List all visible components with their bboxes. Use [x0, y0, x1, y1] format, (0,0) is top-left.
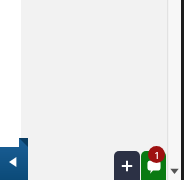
button[interactable]: Chat	[141, 151, 166, 180]
staticText: 1	[154, 149, 160, 161]
button[interactable]: Add	[114, 151, 140, 180]
button[interactable]: Previous	[0, 138, 28, 180]
button[interactable]: Scroll down	[168, 162, 184, 180]
